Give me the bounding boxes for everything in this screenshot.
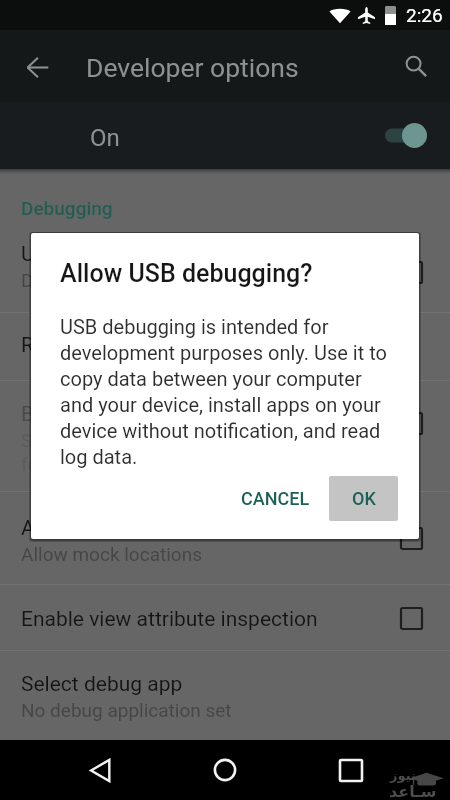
button[interactable]: Recent apps [328,747,374,793]
staticText: 2:26 [406,4,443,26]
staticText: سـاعد [389,782,437,800]
staticText: USB debugging [21,242,164,267]
staticText: On [90,124,120,152]
staticText: CANCEL [241,488,310,509]
button[interactable]: Toggle [388,400,434,446]
button[interactable]: Home [202,747,248,793]
button[interactable]: CANCEL [229,476,322,521]
staticText: Allow mock locations [21,543,381,565]
button[interactable]: Toggle [388,249,434,295]
button[interactable]: Search [392,42,440,90]
staticText: Debugging [21,197,113,219]
staticText: No debug application set [21,699,381,721]
staticText: OK [352,488,376,509]
button[interactable]: Back [77,747,123,793]
staticText: نیوز [390,768,416,783]
staticText: Developer options [86,52,299,83]
staticText: Enable view attribute inspection [21,607,318,632]
button[interactable]: Navigate up [13,43,61,91]
staticText: Revoke USB debugging authorizations [21,333,376,358]
staticText: Debug mode when USB is connected [21,269,381,291]
staticText: Allow USB debugging? [60,259,313,288]
staticText: USB debugging is intended for developmen… [60,315,393,468]
staticText: Show a button in the power menu for taki… [21,429,311,476]
staticText: Select debug app [21,672,183,697]
button[interactable]: OK [329,476,398,521]
button[interactable]: Toggle [388,515,434,561]
button[interactable]: On [0,102,450,169]
staticText: Allow mock locations [21,516,222,541]
staticText: Bug report shortcut [21,402,203,427]
button[interactable]: Toggle [388,595,434,641]
